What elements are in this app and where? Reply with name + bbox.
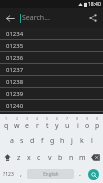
button[interactable]: 01234	[0, 28, 103, 40]
staticText: 01238	[6, 78, 24, 86]
staticText: d	[30, 136, 35, 146]
button[interactable]: 01237	[0, 64, 103, 76]
button[interactable]: x	[24, 149, 34, 166]
staticText: z	[17, 153, 21, 163]
button[interactable]: h	[57, 132, 67, 149]
button[interactable]: 01240	[0, 100, 103, 112]
button[interactable]: 01239	[0, 88, 103, 100]
staticText: Search...	[22, 13, 50, 23]
button[interactable]: m	[77, 149, 88, 166]
button[interactable]: 5	[42, 115, 52, 132]
staticText: t	[46, 121, 49, 131]
staticText: 7	[66, 116, 69, 121]
staticText: 6	[56, 116, 59, 121]
staticText: w	[14, 121, 20, 131]
button[interactable]: v	[44, 149, 55, 166]
button[interactable]: 7	[62, 115, 72, 132]
button[interactable]: n	[66, 149, 77, 166]
staticText: v	[48, 153, 52, 163]
button[interactable]: .	[75, 166, 85, 182]
button[interactable]: l	[87, 132, 97, 149]
staticText: 1	[5, 116, 8, 121]
staticText: 01237	[6, 66, 24, 74]
button[interactable]: k	[77, 132, 87, 149]
staticText: l	[91, 136, 93, 146]
button[interactable]: Shift	[1, 149, 14, 166]
button[interactable]: 01236	[0, 52, 103, 64]
staticText: e	[25, 121, 29, 131]
staticText: 4	[36, 116, 39, 121]
button[interactable]: ?123	[1, 166, 16, 182]
button[interactable]: English	[27, 169, 74, 179]
staticText: u	[65, 121, 70, 131]
button[interactable]: 9	[82, 115, 92, 132]
button[interactable]: 1	[1, 115, 12, 132]
button[interactable]: ,	[16, 166, 26, 182]
staticText: .	[79, 169, 81, 179]
staticText: o	[85, 121, 90, 131]
button[interactable]: Share	[83, 8, 103, 28]
staticText: 01240	[6, 102, 24, 110]
button[interactable]: 6	[52, 115, 62, 132]
staticText: n	[69, 153, 74, 163]
staticText: 8	[76, 116, 79, 121]
button[interactable]: 8	[72, 115, 82, 132]
button[interactable]: b	[55, 149, 66, 166]
staticText: 2	[16, 116, 19, 121]
staticText: 01239	[6, 90, 24, 98]
staticText: b	[58, 153, 63, 163]
button[interactable]: 3	[22, 115, 32, 132]
button[interactable]: j	[67, 132, 77, 149]
staticText: s	[20, 136, 24, 146]
staticText: i	[77, 121, 79, 131]
staticText: 9	[86, 116, 89, 121]
staticText: f	[41, 136, 44, 146]
staticText: c	[37, 153, 41, 163]
staticText: y	[55, 121, 59, 131]
button[interactable]: c	[34, 149, 44, 166]
button[interactable]: Search	[88, 169, 99, 180]
staticText: x	[27, 153, 31, 163]
button[interactable]: z	[14, 149, 24, 166]
button[interactable]: f	[37, 132, 47, 149]
staticText: q	[4, 121, 9, 131]
staticText: h	[60, 136, 65, 146]
button[interactable]: Back	[0, 8, 20, 28]
button[interactable]: Backspace	[88, 149, 102, 166]
staticText: p	[95, 121, 100, 131]
staticText: English	[43, 171, 59, 177]
staticText: 18:40	[88, 1, 101, 8]
button[interactable]: a	[7, 132, 17, 149]
staticText: j	[71, 136, 73, 146]
staticText: k	[80, 136, 84, 146]
button[interactable]: 01235	[0, 40, 103, 52]
button[interactable]: g	[47, 132, 57, 149]
button[interactable]: 2	[12, 115, 22, 132]
staticText: 0	[96, 116, 99, 121]
staticText: 01236	[6, 54, 24, 62]
button[interactable]: s	[17, 132, 27, 149]
button[interactable]: 01238	[0, 76, 103, 88]
staticText: ?123	[3, 171, 14, 178]
staticText: m	[79, 153, 86, 163]
staticText: r	[36, 121, 39, 131]
button[interactable]: 4	[32, 115, 42, 132]
button[interactable]: 0	[92, 115, 102, 132]
staticText: 5	[46, 116, 49, 121]
staticText: 01235	[6, 42, 24, 50]
staticText: g	[50, 136, 55, 146]
staticText: 3	[26, 116, 29, 121]
staticText: ,	[20, 169, 22, 179]
staticText: 01234	[6, 30, 24, 38]
button[interactable]: d	[27, 132, 37, 149]
staticText: a	[10, 136, 14, 146]
